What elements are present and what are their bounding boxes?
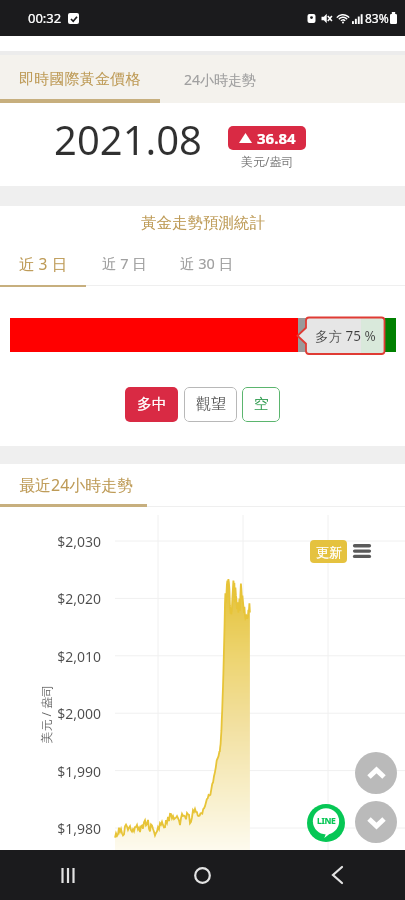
button[interactable]: 即時國際黃金價格 (0, 55, 160, 103)
staticText: 多中 (137, 395, 167, 414)
button[interactable]: LINE (307, 804, 345, 842)
button[interactable]: 多中 (125, 387, 178, 422)
staticText: $1,980 (0, 819, 101, 838)
button[interactable]: 近 3 日 (0, 242, 85, 284)
staticText: LINE (317, 815, 336, 827)
staticText: $2,030 (0, 532, 101, 551)
staticText: 36.84 (257, 128, 296, 148)
staticText: 近 7 日 (102, 253, 147, 273)
button[interactable]: Recents (0, 850, 135, 900)
staticText: 觀望 (196, 395, 226, 414)
staticText: 近 30 日 (180, 253, 234, 273)
staticText: 多方 75 % (315, 327, 376, 345)
button[interactable]: 近 30 日 (164, 242, 249, 284)
staticText: 空 (254, 395, 269, 414)
button[interactable]: 24小時走勢 (145, 55, 295, 103)
staticText: $2,000 (0, 704, 101, 723)
button[interactable]: Scroll down (355, 801, 397, 843)
staticText: 即時國際黃金價格 (19, 70, 141, 89)
staticText: 2021.08 (54, 112, 202, 166)
staticText: 83% (365, 10, 389, 26)
button[interactable]: Back (270, 850, 405, 900)
button[interactable]: 空 (242, 387, 280, 422)
staticText: $2,010 (0, 647, 101, 666)
button[interactable]: 更新 (310, 540, 347, 563)
staticText: $2,020 (0, 589, 101, 608)
staticText: 最近24小時走勢 (19, 474, 134, 496)
staticText: 更新 (316, 544, 342, 560)
button[interactable]: Home (135, 850, 270, 900)
button[interactable]: 觀望 (184, 387, 237, 422)
staticText: 00:32 (28, 9, 62, 27)
button[interactable]: 近 7 日 (85, 242, 164, 284)
staticText: 美元 / 盎司 (37, 684, 53, 743)
staticText: 黃金走勢預測統計 (141, 213, 265, 233)
button[interactable]: Menu (353, 544, 371, 558)
staticText: 美元/盎司 (241, 153, 294, 169)
staticText: 近 3 日 (19, 253, 67, 274)
staticText: $1,990 (0, 762, 101, 781)
button[interactable]: Scroll up (355, 752, 397, 794)
staticText: 24小時走勢 (184, 70, 257, 89)
